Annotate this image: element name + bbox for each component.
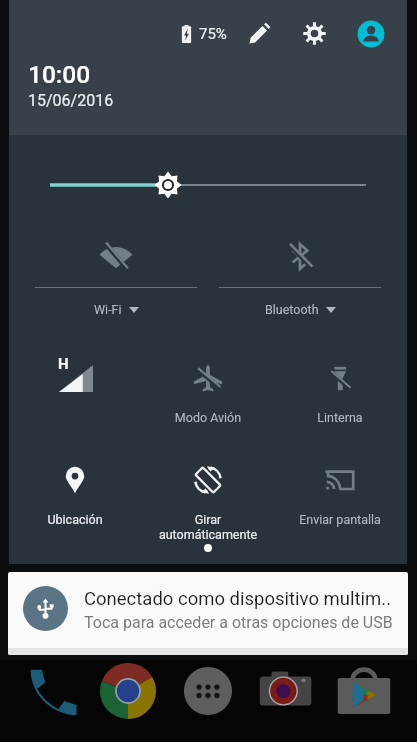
- staticText: Modo Avión: [142, 410, 274, 425]
- staticText: 75%: [199, 25, 227, 43]
- staticText: 10:00: [28, 60, 91, 89]
- staticText: Toca para acceder a otras opciones de US…: [84, 613, 393, 632]
- staticText: Enviar pantalla: [274, 512, 406, 527]
- button[interactable]: Edit: [246, 20, 273, 47]
- staticText: 15/06/2016: [28, 91, 114, 110]
- button[interactable]: Wi-Fi: [24, 225, 208, 330]
- button[interactable]: Modo Avión: [142, 346, 274, 438]
- button[interactable]: Camera: [257, 663, 313, 719]
- button[interactable]: Conectado como dispositivo multim..: [8, 572, 408, 655]
- staticText: Bluetooth: [265, 302, 319, 317]
- staticText: Ubicación: [9, 512, 141, 527]
- button[interactable]: Girar automáticamente: [142, 448, 274, 540]
- button[interactable]: Linterna: [274, 346, 406, 438]
- button[interactable]: Mobile data: [9, 346, 141, 438]
- staticText: Conectado como dispositivo multim..: [84, 588, 392, 610]
- button[interactable]: User profile: [357, 20, 385, 48]
- button[interactable]: Ubicación: [9, 448, 141, 540]
- button[interactable]: Enviar pantalla: [274, 448, 406, 540]
- button[interactable]: Brightness: [9, 135, 407, 231]
- button[interactable]: Apps: [180, 663, 236, 719]
- button[interactable]: Chrome: [100, 663, 156, 719]
- staticText: Linterna: [274, 410, 406, 425]
- button[interactable]: Bluetooth: [208, 225, 392, 330]
- button[interactable]: Play Store: [336, 663, 392, 719]
- staticText: H: [58, 355, 69, 373]
- staticText: Wi-Fi: [94, 302, 122, 317]
- button[interactable]: Settings: [302, 21, 327, 46]
- button[interactable]: Phone: [25, 663, 81, 719]
- staticText: Girar automáticamente: [142, 512, 274, 542]
